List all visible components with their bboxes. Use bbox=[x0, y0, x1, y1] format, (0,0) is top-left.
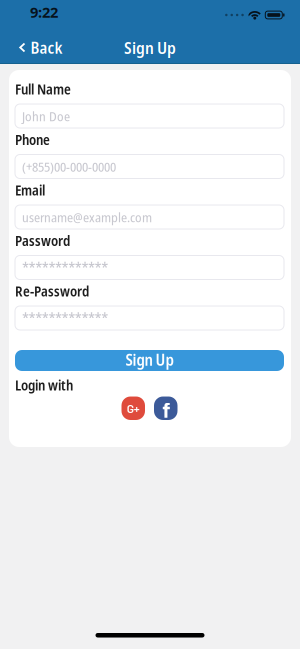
staticText: Password bbox=[15, 231, 70, 250]
button[interactable]: Sign Up bbox=[15, 350, 284, 371]
staticText: John Doe bbox=[22, 107, 70, 125]
staticText: Email bbox=[15, 180, 45, 200]
staticText: ************* bbox=[22, 257, 108, 278]
button[interactable]: username@example.com bbox=[15, 205, 284, 229]
staticText: G+ bbox=[127, 401, 140, 415]
staticText: Back bbox=[30, 37, 62, 58]
button[interactable]: John Doe bbox=[15, 104, 284, 128]
staticText: Login with bbox=[15, 375, 73, 395]
button[interactable]: ************* bbox=[15, 306, 284, 330]
staticText: Re-Password bbox=[15, 281, 89, 301]
button[interactable]: Login with Google bbox=[121, 396, 145, 420]
staticText: username@example.com bbox=[22, 208, 152, 226]
staticText: Sign Up bbox=[125, 349, 173, 370]
staticText: Phone bbox=[15, 130, 50, 149]
staticText: ************* bbox=[22, 307, 108, 329]
button[interactable]: Login with Facebook bbox=[154, 396, 177, 420]
button[interactable]: ************* bbox=[15, 255, 284, 279]
button[interactable]: (+855)00-000-0000 bbox=[15, 154, 284, 178]
staticText: (+855)00-000-0000 bbox=[22, 157, 116, 176]
staticText: 9:22 bbox=[30, 2, 58, 22]
button[interactable]: Back bbox=[0, 37, 62, 58]
staticText: Sign Up bbox=[124, 36, 176, 59]
staticText: Full Name bbox=[15, 79, 71, 99]
staticText: f bbox=[162, 396, 170, 422]
